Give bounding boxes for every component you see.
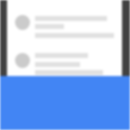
button[interactable]: List item 1 [7,11,122,45]
button[interactable]: List item 2 [7,49,122,83]
